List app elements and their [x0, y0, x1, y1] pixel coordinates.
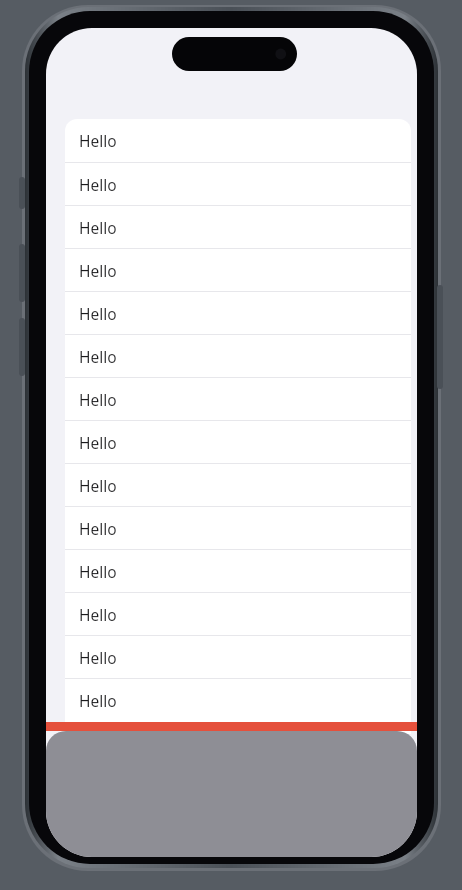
staticText: Hello — [79, 432, 117, 453]
button[interactable]: Hello — [65, 335, 411, 377]
button[interactable]: Hello — [65, 249, 411, 291]
button[interactable]: Hello — [65, 679, 411, 721]
staticText: Hello — [79, 346, 117, 367]
button[interactable]: Hello — [65, 206, 411, 248]
button[interactable]: Hello — [65, 636, 411, 678]
staticText: Hello — [79, 217, 117, 238]
staticText: Hello — [79, 130, 117, 151]
button[interactable]: Hello — [65, 292, 411, 334]
button[interactable]: Hello — [65, 464, 411, 506]
button[interactable]: Hello — [65, 119, 411, 162]
button[interactable]: Hello — [65, 378, 411, 420]
button[interactable]: Hello — [65, 421, 411, 463]
other: Dynamic Island — [172, 37, 297, 71]
staticText: Hello — [79, 260, 117, 281]
staticText: Hello — [79, 389, 117, 410]
staticText: Hello — [79, 475, 117, 496]
staticText: Hello — [79, 604, 117, 625]
button[interactable]: Hello — [65, 163, 411, 205]
staticText: Hello — [79, 561, 117, 582]
button[interactable]: Hello — [65, 593, 411, 635]
button[interactable]: Hello — [65, 550, 411, 592]
staticText: Hello — [79, 174, 117, 195]
staticText: Hello — [79, 518, 117, 539]
staticText: Hello — [79, 303, 117, 324]
staticText: Hello — [79, 690, 117, 711]
button[interactable]: Bottom panel — [46, 731, 417, 857]
button[interactable]: Hello — [65, 507, 411, 549]
staticText: Hello — [79, 647, 117, 668]
